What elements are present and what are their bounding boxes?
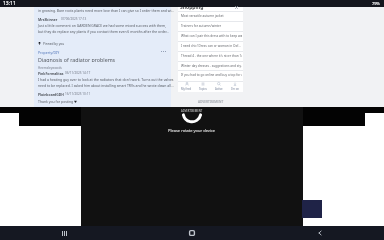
- staticText: in growing. Bare roots plants need more …: [38, 8, 175, 13]
- staticText: Diagnosis of radiator problems: [38, 56, 116, 62]
- staticText: If you had to go online and buy a top fo…: [181, 73, 242, 77]
- button[interactable]: Most versatile autumn jacket: [178, 11, 243, 21]
- button[interactable]: I'm on: [227, 81, 243, 92]
- staticText: need to be replaced. I asked him about i…: [38, 83, 174, 88]
- staticText: 07/06/2025 17:13: [61, 17, 87, 21]
- staticText: Please rotate your device: [168, 128, 216, 133]
- button[interactable]: Trainers for autumn/winter: [178, 21, 243, 31]
- button[interactable]: Active: [211, 81, 227, 92]
- staticText: Heemsleywoods: [38, 66, 62, 70]
- button[interactable]: My feed: [178, 81, 195, 92]
- staticText: ADVERTISEMENT: [181, 109, 203, 113]
- staticText: Pinned by you: [43, 42, 65, 46]
- staticText: I had a heating guy over to look at the …: [38, 77, 174, 82]
- staticText: What can I pair this dress with to keep …: [181, 34, 242, 38]
- staticText: My feed: [181, 87, 192, 91]
- staticText: Winter day dresses - suggestions and sty…: [181, 64, 242, 68]
- staticText: Active: [215, 87, 223, 91]
- staticText: 06/11/2025 14:17: [65, 71, 91, 75]
- staticText: Thread 4 - the one where it's nicer than…: [181, 54, 242, 58]
- staticText: I'm on: [231, 87, 239, 91]
- button[interactable]: If you had to go online and buy a top fo…: [178, 70, 243, 80]
- staticText: MrsSkinner: [38, 17, 58, 22]
- button[interactable]: What can I pair this dress with to keep …: [178, 31, 243, 41]
- button[interactable]: Home: [128, 226, 256, 240]
- staticText: PinkFormalitas: [38, 71, 64, 76]
- staticText: 16/11/2025 10:11: [65, 92, 91, 96]
- button[interactable]: Close: [232, 3, 240, 11]
- button[interactable]: Winter day dresses - suggestions and sty…: [178, 61, 243, 71]
- staticText: Topics: [199, 87, 207, 91]
- button[interactable]: Recents: [0, 226, 128, 240]
- staticText: Just a little comment on GARDEN GRACE we…: [38, 23, 167, 28]
- staticText: Trainers for autumn/winter: [181, 24, 222, 28]
- button[interactable]: I need chic! Dress can or woman in Oxf…: [178, 41, 243, 51]
- staticText: I need chic! Dress can or woman in Oxf…: [181, 44, 241, 48]
- staticText: 13:11: [3, 0, 16, 7]
- button[interactable]: Topics: [195, 81, 211, 92]
- button[interactable]: Thread 4 - the one where it's nicer than…: [178, 51, 243, 61]
- staticText: 79%: [372, 1, 380, 6]
- staticText: Thank you for posting ♥: [38, 99, 78, 104]
- staticText: Shopping: [180, 4, 204, 11]
- staticText: ADVERTISEMENT: [198, 100, 224, 104]
- button[interactable]: More options: [158, 46, 169, 57]
- button[interactable]: Back: [256, 226, 384, 240]
- staticText: PlainboardGDH: [38, 92, 64, 97]
- staticText: Most versatile autumn jacket: [181, 14, 224, 18]
- staticText: Property/DIY: [38, 50, 60, 55]
- staticText: but they do replace any plants if you co…: [38, 29, 170, 34]
